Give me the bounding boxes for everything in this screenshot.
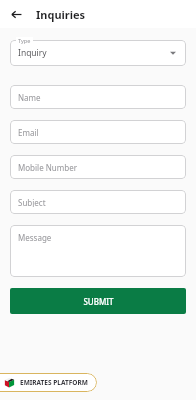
staticText: Inquiries — [36, 7, 86, 22]
button[interactable]: Inquiry — [10, 40, 186, 66]
staticText: Email — [18, 127, 39, 137]
button[interactable]: Back — [8, 6, 24, 22]
staticText: EMIRATES PLATFORM — [20, 378, 88, 387]
staticText: Message — [18, 232, 52, 243]
button[interactable]: Message — [10, 225, 186, 277]
staticText: Name — [18, 92, 41, 102]
button[interactable]: EMIRATES PLATFORM — [0, 373, 97, 392]
button[interactable]: Mobile Number — [10, 155, 186, 179]
staticText: Subject — [18, 197, 46, 207]
staticText: Inquiry — [18, 47, 47, 59]
button[interactable]: SUBMIT — [10, 288, 186, 314]
staticText: SUBMIT — [83, 296, 114, 307]
staticText: Type — [18, 37, 31, 44]
button[interactable]: Subject — [10, 190, 186, 214]
button[interactable]: Name — [10, 85, 186, 109]
staticText: Mobile Number — [18, 162, 77, 172]
button[interactable]: Email — [10, 120, 186, 144]
